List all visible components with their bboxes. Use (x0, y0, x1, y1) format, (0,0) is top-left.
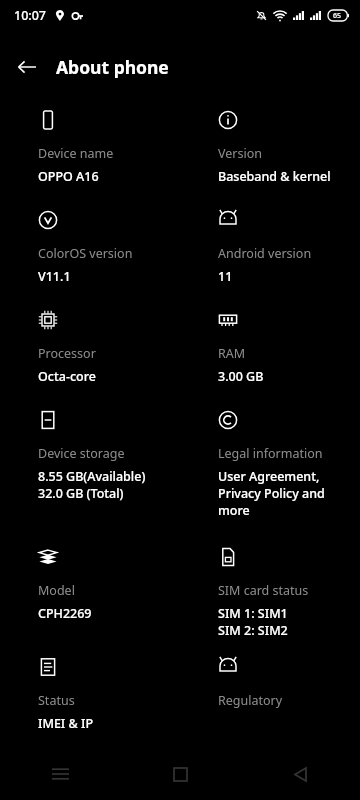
staticText: 65 (333, 11, 342, 21)
staticText: 11 (218, 268, 233, 285)
staticText: 8.55 GB(Available) (38, 468, 146, 485)
button[interactable]: Legal information (180, 410, 360, 519)
staticText: Octa-core (38, 368, 96, 385)
staticText: 3.00 GB (218, 368, 264, 385)
staticText: Device storage (38, 445, 125, 462)
button[interactable]: Status (0, 657, 180, 732)
staticText: Device name (38, 145, 114, 162)
button[interactable]: Processor (0, 310, 180, 385)
staticText: SIM 2: SIM2 (218, 622, 288, 639)
staticText: Processor (38, 345, 96, 362)
staticText: V11.1 (38, 268, 71, 285)
staticText: Android version (218, 245, 312, 262)
staticText: User Agreement, (218, 468, 320, 485)
staticText: SIM 1: SIM1 (218, 605, 288, 622)
staticText: SIM card status (218, 582, 309, 599)
button[interactable]: Version (180, 110, 360, 185)
button[interactable]: Device storage (0, 410, 180, 502)
staticText: 10:07 (14, 7, 47, 24)
staticText: 32.0 GB (Total) (38, 485, 124, 502)
staticText: more (218, 502, 250, 519)
button[interactable]: Model (0, 547, 180, 622)
button[interactable]: Device name (0, 110, 180, 185)
staticText: Baseband & kernel (218, 168, 331, 185)
staticText: Version (218, 145, 262, 162)
button[interactable]: Android version (180, 210, 360, 285)
button[interactable]: Regulatory (180, 657, 360, 715)
staticText: OPPO A16 (38, 168, 99, 185)
staticText: ColorOS version (38, 245, 133, 262)
staticText: Status (38, 692, 75, 709)
staticText: Model (38, 582, 75, 599)
staticText: IMEI & IP (38, 715, 94, 732)
staticText: About phone (56, 55, 169, 79)
button[interactable]: SIM card status (180, 547, 360, 639)
button[interactable]: RAM (180, 310, 360, 385)
button[interactable]: Home (120, 748, 240, 800)
button[interactable]: Back (240, 748, 360, 800)
staticText: Regulatory (218, 692, 283, 709)
button[interactable]: ColorOS version (0, 210, 180, 285)
staticText: Privacy Policy and (218, 485, 325, 502)
button[interactable]: Back (7, 47, 47, 87)
staticText: Legal information (218, 445, 323, 462)
button[interactable]: Recent apps (0, 748, 120, 800)
staticText: RAM (218, 345, 246, 362)
staticText: CPH2269 (38, 605, 92, 622)
